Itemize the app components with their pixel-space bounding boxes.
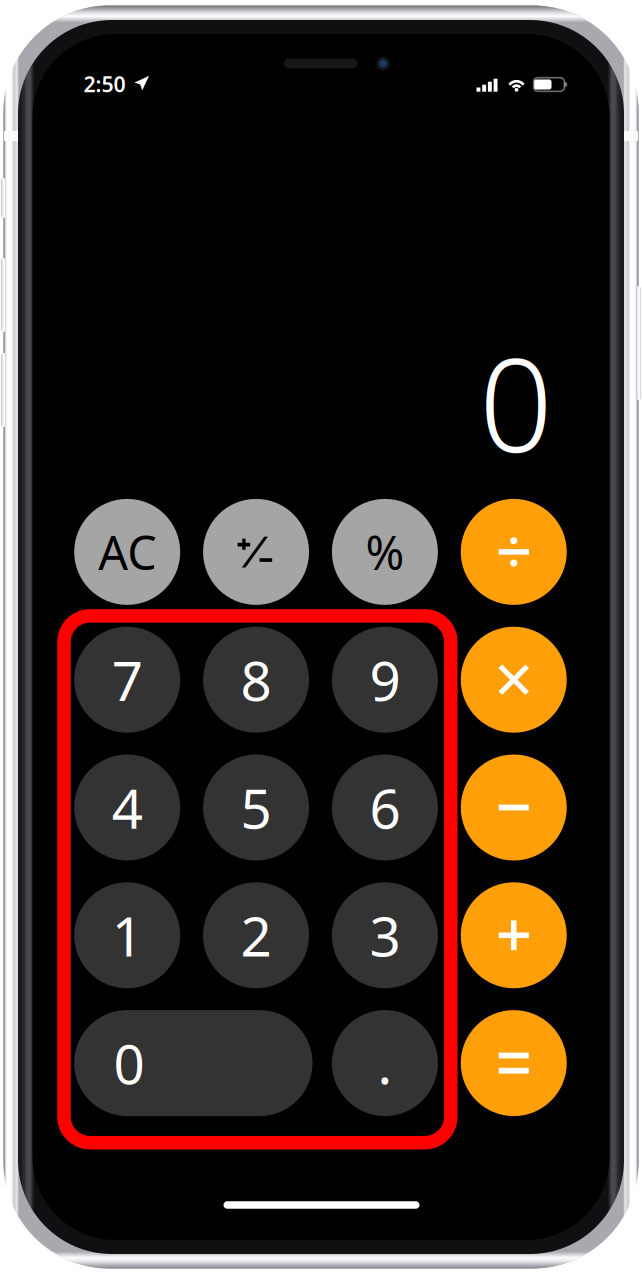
- button[interactable]: [461, 499, 567, 605]
- button[interactable]: %: [332, 499, 438, 605]
- staticText: .: [377, 1027, 392, 1099]
- button[interactable]: 5: [203, 754, 309, 860]
- button[interactable]: [461, 1010, 567, 1116]
- staticText: 1: [112, 899, 143, 972]
- staticText: 2:50: [83, 70, 125, 98]
- button[interactable]: [203, 499, 309, 605]
- staticText: 3: [369, 899, 400, 972]
- staticText: 8: [241, 643, 272, 716]
- button[interactable]: [461, 754, 567, 860]
- staticText: 0: [113, 1027, 144, 1099]
- button[interactable]: 4: [74, 754, 180, 860]
- staticText: 6: [369, 771, 400, 844]
- button[interactable]: 6: [332, 754, 438, 860]
- staticText: 4: [112, 771, 143, 844]
- staticText: AC: [98, 521, 156, 583]
- button[interactable]: [461, 627, 567, 733]
- button[interactable]: 0: [74, 1010, 312, 1116]
- button[interactable]: 3: [332, 882, 438, 988]
- button[interactable]: .: [332, 1010, 438, 1116]
- staticText: 2: [241, 899, 272, 972]
- button[interactable]: 2: [203, 882, 309, 988]
- staticText: 9: [369, 643, 400, 716]
- staticText: 5: [241, 771, 272, 844]
- staticText: 7: [112, 643, 143, 716]
- staticText: %: [365, 521, 404, 583]
- button[interactable]: 7: [74, 627, 180, 733]
- button[interactable]: AC: [74, 499, 180, 605]
- button[interactable]: 8: [203, 627, 309, 733]
- button[interactable]: 9: [332, 627, 438, 733]
- button[interactable]: 1: [74, 882, 180, 988]
- staticText: 0: [479, 316, 553, 488]
- button[interactable]: [461, 882, 567, 988]
